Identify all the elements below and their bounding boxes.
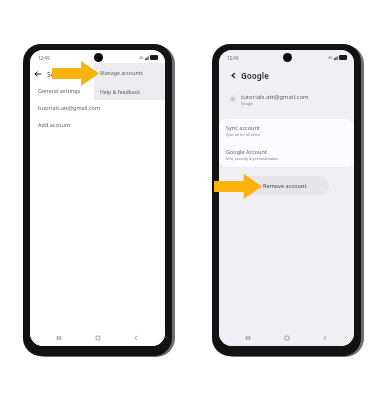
staticText: 4G (328, 55, 333, 60)
staticText: Help & feedback (100, 88, 140, 95)
button[interactable]: General settings (30, 83, 165, 97)
staticText: tutorials.att@gmail.com (241, 93, 309, 101)
button[interactable]: Recents (54, 333, 64, 343)
button[interactable]: Help & feedback (94, 82, 165, 100)
button[interactable]: Sync account (219, 119, 354, 143)
staticText: Settings (47, 70, 75, 80)
button[interactable]: tutorials.att@gmail.com (30, 100, 165, 114)
button[interactable]: Google Account (219, 143, 354, 167)
button[interactable]: Back (33, 69, 43, 79)
button[interactable]: Back (320, 333, 330, 343)
staticText: 4G (139, 55, 144, 60)
staticText: 12:49 (38, 55, 50, 61)
staticText: Sync on for all items (226, 132, 260, 137)
button[interactable]: Home (282, 333, 292, 343)
button[interactable]: Back (229, 71, 238, 80)
button[interactable]: Back (131, 333, 141, 343)
staticText: Google (241, 101, 253, 106)
button[interactable]: Manage accounts (94, 63, 165, 82)
staticText: tutorials.att@gmail.com (38, 104, 101, 111)
staticText: Info, security & personalization (226, 156, 279, 161)
staticText: Google (241, 70, 270, 81)
button[interactable]: tutorials.att@gmail.com (219, 91, 354, 107)
button[interactable]: Remove account (240, 176, 329, 195)
button[interactable]: Recents (243, 333, 253, 343)
staticText: Google Account (226, 148, 267, 155)
button[interactable]: Home (93, 333, 103, 343)
staticText: Add account (38, 121, 71, 128)
staticText: Manage accounts (100, 69, 143, 76)
staticText: Sync account (226, 124, 260, 131)
staticText: 12:49 (227, 55, 239, 61)
button[interactable]: Add account (30, 117, 165, 131)
staticText: General settings (38, 87, 81, 94)
staticText: Remove account (263, 182, 307, 189)
